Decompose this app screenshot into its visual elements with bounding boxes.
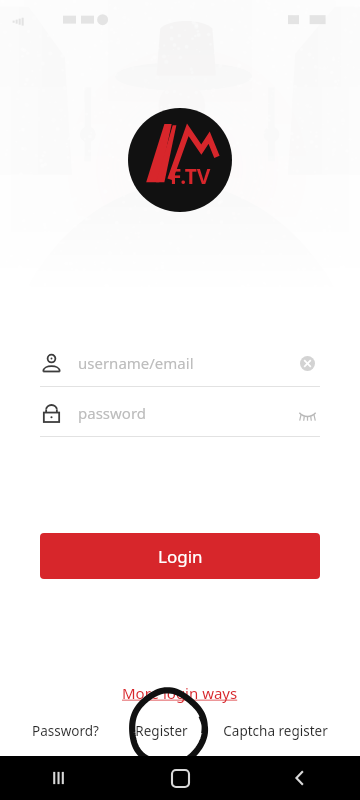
button[interactable]: Back — [272, 756, 328, 800]
staticText: Login — [158, 545, 203, 568]
button[interactable]: Home — [152, 756, 208, 800]
staticText: F.TV — [170, 162, 211, 191]
staticText: Password? — [32, 722, 99, 740]
button[interactable]: password — [40, 398, 320, 428]
button[interactable]: Recent apps — [32, 756, 88, 800]
button[interactable]: Login — [40, 533, 320, 579]
button[interactable]: Register — [129, 716, 194, 746]
staticText: More login ways — [122, 683, 238, 703]
button[interactable]: Clear username — [294, 350, 320, 376]
button[interactable]: Password? — [26, 716, 105, 746]
staticText: username/email — [78, 353, 294, 373]
staticText: Register — [135, 722, 188, 740]
button[interactable]: username/email — [40, 348, 320, 378]
staticText: password — [78, 403, 294, 423]
staticText: Captcha register — [223, 722, 328, 740]
button[interactable]: Show password — [294, 400, 320, 426]
button[interactable]: More login ways — [116, 681, 244, 705]
button[interactable]: Captcha register — [217, 716, 334, 746]
